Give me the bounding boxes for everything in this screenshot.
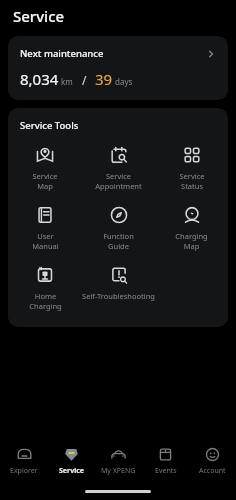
- staticText: km: [61, 76, 73, 87]
- button[interactable]: Service Status: [155, 145, 228, 192]
- other: Home Charging: [36, 266, 54, 284]
- other: Charging Map: [183, 206, 201, 224]
- button[interactable]: Service Appointment: [82, 145, 155, 192]
- button[interactable]: Self Troubleshooting: [82, 265, 155, 302]
- staticText: Next maintenance: [20, 47, 104, 60]
- other: Self Troubleshooting: [110, 266, 128, 284]
- other: Service Map: [36, 146, 54, 164]
- staticText: Service Tools: [20, 119, 79, 132]
- staticText: Service Map: [32, 171, 58, 191]
- staticText: Home Charging: [29, 291, 62, 311]
- other: User Manual: [36, 206, 54, 224]
- staticText: Events: [155, 466, 177, 476]
- staticText: Service: [59, 466, 85, 476]
- staticText: Charging Map: [175, 231, 208, 251]
- other: Explorer: [17, 447, 32, 462]
- staticText: Service Appointment: [95, 171, 142, 191]
- staticText: days: [115, 76, 133, 87]
- button[interactable]: Service: [48, 445, 95, 478]
- other: Service Status: [183, 146, 201, 164]
- staticText: My XPENG: [101, 466, 136, 476]
- staticText: 39: [95, 69, 113, 89]
- button[interactable]: My XPENG: [95, 445, 142, 478]
- other: Events: [158, 447, 173, 462]
- button[interactable]: Function Guide: [82, 205, 155, 252]
- staticText: Account: [199, 466, 226, 476]
- button[interactable]: Explorer: [0, 445, 48, 478]
- button[interactable]: Next maintenance: [8, 36, 228, 100]
- button[interactable]: Account: [189, 445, 236, 478]
- staticText: Explorer: [10, 466, 38, 476]
- staticText: 8,034: [20, 69, 59, 89]
- staticText: Self-Troubleshooting: [82, 291, 155, 301]
- button[interactable]: Charging Map: [155, 205, 228, 252]
- other: Service Appointment: [110, 146, 128, 164]
- other: Function Guide: [110, 206, 128, 224]
- staticText: Function Guide: [103, 231, 134, 251]
- button[interactable]: Home Charging: [8, 265, 82, 312]
- button[interactable]: Events: [142, 445, 189, 478]
- button[interactable]: User Manual: [8, 205, 82, 252]
- other: My XPENG: [111, 447, 126, 462]
- button[interactable]: Service Map: [8, 145, 82, 192]
- other: Account: [205, 447, 220, 462]
- staticText: /: [82, 72, 87, 88]
- staticText: Service Status: [179, 171, 205, 191]
- staticText: Service: [13, 6, 65, 26]
- other: Service: [64, 447, 79, 462]
- staticText: User Manual: [32, 231, 59, 251]
